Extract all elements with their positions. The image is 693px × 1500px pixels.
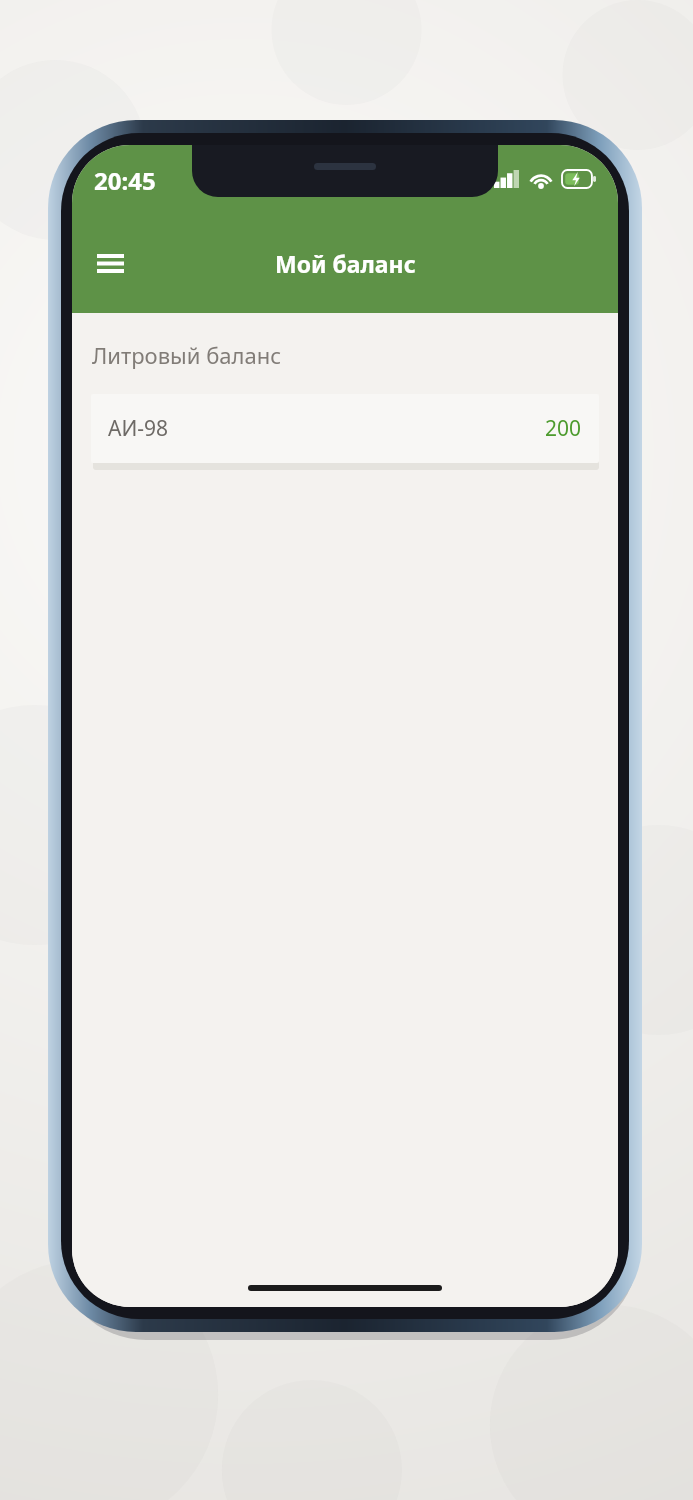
staticText: АИ-98 [108, 414, 169, 443]
staticText: 20:45 [94, 164, 156, 197]
staticText: 200 [545, 414, 582, 443]
button[interactable]: Open navigation menu [82, 235, 138, 291]
button[interactable]: АИ-98 [91, 394, 599, 463]
staticText: Мой баланс [275, 248, 416, 279]
staticText: Литровый баланс [92, 340, 282, 370]
